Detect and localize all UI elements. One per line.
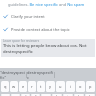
staticText: Provide context about the topic [11, 27, 70, 32]
staticText: p [89, 84, 92, 89]
staticText: destroyspecific [27, 70, 54, 80]
staticText: e [22, 84, 25, 89]
button[interactable]: i [66, 81, 75, 92]
button[interactable]: o [76, 81, 85, 92]
staticText: k [78, 94, 81, 96]
staticText: l [89, 94, 91, 96]
button[interactable]: t [37, 81, 45, 92]
button[interactable]: g [41, 94, 51, 96]
staticText: "destroyspecific" [0, 70, 26, 80]
staticText: q [4, 84, 7, 89]
staticText: j [67, 94, 69, 96]
staticText: r [31, 84, 33, 89]
staticText: h [56, 94, 59, 96]
button[interactable]: s [11, 94, 20, 96]
button[interactable]: Clarify your intent [0, 14, 96, 19]
staticText: u [59, 84, 62, 89]
button[interactable]: "destroyspecific" [0, 68, 26, 81]
staticText: w [12, 84, 16, 89]
staticText: Leave space for reviewers [3, 39, 40, 43]
staticText: Clarify your intent [11, 14, 45, 19]
staticText: t [40, 84, 42, 89]
button[interactable]: d [21, 94, 30, 96]
staticText: d [24, 94, 27, 96]
button[interactable]: f [31, 94, 40, 96]
staticText: This is letting people know about cos. N… [3, 43, 87, 55]
button[interactable]: a [1, 94, 10, 96]
button[interactable]: q [1, 81, 9, 92]
button[interactable]: Provide context about the topic [0, 27, 96, 32]
button[interactable]: l [85, 94, 95, 96]
button[interactable]: j [63, 94, 73, 96]
button[interactable]: destroyspecific [27, 68, 54, 81]
button[interactable]: h [52, 94, 62, 96]
button[interactable]: w [10, 81, 18, 92]
button[interactable]: p [86, 81, 95, 92]
button[interactable]: k [74, 94, 84, 96]
button[interactable]: y [46, 81, 55, 92]
staticText: y [49, 84, 52, 89]
button[interactable]: r [28, 81, 36, 92]
staticText: i [70, 84, 72, 89]
staticText: guidelines. Be nice specific and No spam [8, 2, 85, 7]
button[interactable]: Leave space for reviewers [1, 39, 95, 57]
button[interactable]: u [56, 81, 65, 92]
staticText: f [35, 94, 37, 96]
staticText: o [79, 84, 82, 89]
button[interactable]: e [19, 81, 27, 92]
